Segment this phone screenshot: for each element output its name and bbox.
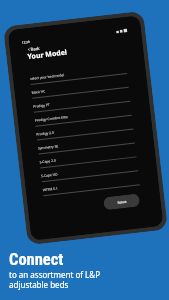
- other: Signal, wifi and battery: [116, 29, 127, 34]
- button[interactable]: select your bed model: [29, 60, 127, 85]
- staticText: S-Cape HD: [41, 171, 58, 177]
- button[interactable]: Black HC: [31, 74, 129, 99]
- staticText: Prodigy PT: [33, 102, 50, 108]
- staticText: 12:30: [22, 40, 30, 45]
- staticText: Back: [30, 46, 40, 52]
- button[interactable]: Back: [25, 43, 42, 54]
- staticText: Select: [117, 200, 127, 205]
- staticText: select your bed model: [30, 72, 65, 80]
- staticText: Black HC: [31, 88, 46, 94]
- button[interactable]: Prodigy Comfort Elite: [34, 102, 132, 127]
- button[interactable]: Prodigy 2.0: [35, 116, 133, 140]
- button[interactable]: S-Cape HD: [40, 157, 138, 182]
- staticText: Prodigy Comfort Elite: [34, 114, 69, 122]
- button[interactable]: S-Cape 2.0: [39, 143, 137, 168]
- staticText: Connect: [9, 250, 64, 269]
- button[interactable]: Select: [103, 193, 140, 210]
- staticText: Prodigy 2.0: [36, 130, 54, 136]
- button[interactable]: WTFM 5.1: [42, 171, 140, 196]
- staticText: Symmetry SE: [38, 143, 59, 150]
- staticText: S-Cape 2.0: [39, 157, 57, 163]
- button[interactable]: Prodigy PT: [32, 88, 130, 113]
- staticText: to an assortment of L&P adjustable beds: [9, 269, 100, 290]
- button[interactable]: Symmetry SE: [37, 130, 135, 154]
- staticText: Your Model: [27, 48, 68, 62]
- staticText: WTFM 5.1: [42, 185, 59, 191]
